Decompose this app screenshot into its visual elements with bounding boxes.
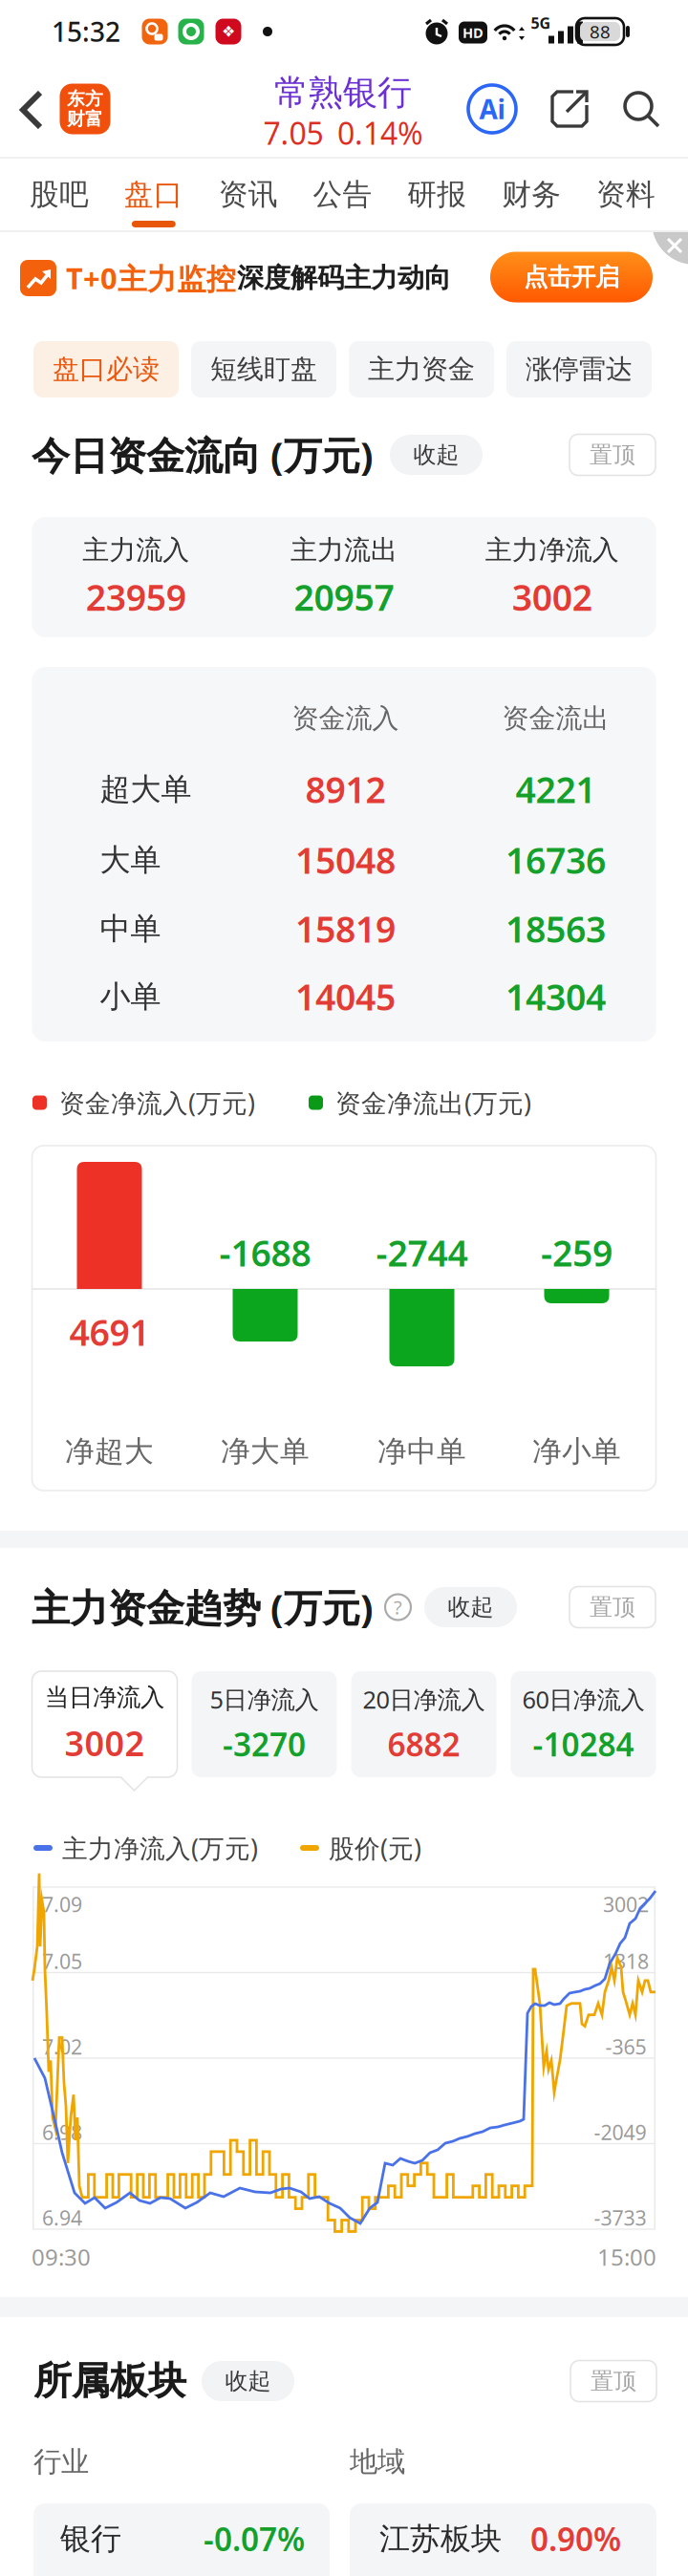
staticText: -3733: [594, 2204, 646, 2231]
staticText: 14045: [295, 973, 396, 1020]
staticText: 20日净流入: [363, 1683, 485, 1715]
staticText: -365: [605, 2033, 646, 2060]
staticText: 超大单: [100, 770, 192, 808]
staticText: 7.09: [42, 1891, 82, 1918]
staticText: 资金流出: [502, 702, 609, 735]
staticText: 小单: [100, 978, 161, 1015]
staticText: 研报: [407, 176, 467, 213]
staticText: 净中单: [377, 1433, 466, 1469]
staticText: 主力净流入: [485, 534, 619, 567]
staticText: 1318: [603, 1948, 649, 1975]
staticText: -0.07%: [204, 2518, 305, 2560]
button[interactable]: 短线盯盘: [191, 341, 336, 397]
staticText: 行业: [33, 2445, 89, 2479]
staticText: 资金流入: [292, 702, 399, 735]
button[interactable]: 主力资金: [349, 341, 494, 397]
staticText: 点击开启: [524, 262, 619, 292]
button[interactable]: Ai 助手: [468, 85, 516, 133]
staticText: 4691: [69, 1308, 150, 1356]
button[interactable]: 收起: [186, 2361, 294, 2401]
staticText: 收起: [225, 2367, 271, 2395]
staticText: 15:32: [52, 14, 120, 49]
button[interactable]: 资讯: [219, 159, 278, 230]
button[interactable]: 股吧: [30, 159, 89, 230]
staticText: 主力流出: [290, 534, 398, 567]
button[interactable]: 公告: [313, 159, 372, 230]
staticText: 资金净流入(万元): [59, 1086, 255, 1120]
button[interactable]: 5日净流入: [192, 1671, 337, 1777]
staticText: -2744: [376, 1229, 468, 1276]
staticText: 地域: [350, 2445, 405, 2479]
button[interactable]: 20日净流入: [351, 1671, 496, 1777]
staticText: 财富: [67, 108, 103, 130]
button[interactable]: 帮助: [374, 1594, 411, 1620]
staticText: -3270: [223, 1723, 306, 1765]
staticText: Ai: [479, 91, 505, 127]
staticText: 5日净流入: [210, 1683, 319, 1715]
button[interactable]: 收起: [374, 435, 483, 475]
staticText: 3002: [603, 1891, 649, 1918]
staticText: 7.05: [263, 113, 323, 153]
button[interactable]: 财务: [502, 159, 561, 230]
staticText: 常熟银行: [274, 72, 412, 114]
staticText: 4221: [516, 766, 596, 813]
button[interactable]: 盘口必读: [33, 341, 179, 397]
staticText: 银行: [60, 2520, 121, 2557]
staticText: 0.90%: [530, 2518, 621, 2560]
button[interactable]: 当日净流入: [32, 1671, 177, 1777]
staticText: 盘口必读: [53, 353, 160, 386]
button[interactable]: 资料: [596, 159, 656, 230]
staticText: 主力流入: [82, 534, 189, 567]
staticText: 60日净流入: [522, 1683, 645, 1715]
staticText: 股价(元): [329, 1831, 421, 1865]
staticText: 15048: [295, 836, 396, 884]
button[interactable]: Share: [548, 88, 591, 130]
button[interactable]: 盘口: [124, 159, 183, 230]
staticText: 当日净流入: [45, 1683, 164, 1712]
button[interactable]: 关闭: [648, 228, 688, 267]
staticText: 收起: [448, 1593, 494, 1621]
staticText: 资金净流出(万元): [335, 1086, 531, 1120]
button[interactable]: 收起: [411, 1587, 517, 1627]
button[interactable]: 置顶: [570, 434, 656, 475]
staticText: 资料: [596, 176, 656, 213]
staticText: 净大单: [221, 1433, 310, 1469]
staticText: 6882: [387, 1723, 460, 1765]
staticText: 短线盯盘: [210, 353, 317, 386]
staticText: 8912: [305, 766, 386, 813]
staticText: 净小单: [532, 1433, 621, 1469]
staticText: 7.02: [42, 2033, 82, 2060]
staticText: 公告: [313, 176, 372, 213]
staticText: 主力资金: [368, 353, 475, 386]
button[interactable]: 涨停雷达: [506, 341, 652, 397]
staticText: 置顶: [591, 2367, 636, 2395]
staticText: 资讯: [219, 176, 278, 213]
staticText: 今日资金流向 (万元): [32, 429, 374, 480]
button[interactable]: 东方财富: [60, 84, 110, 134]
button[interactable]: T+0主力监控: [0, 232, 688, 325]
staticText: 23959: [86, 573, 186, 621]
staticText: 18563: [505, 905, 606, 952]
button[interactable]: 置顶: [570, 2361, 656, 2402]
button[interactable]: Search: [620, 88, 662, 130]
staticText: 15:00: [597, 2242, 656, 2272]
staticText: 盘口: [124, 176, 183, 213]
staticText: 主力净流入(万元): [62, 1831, 258, 1865]
button[interactable]: 银行: [33, 2503, 330, 2576]
staticText: -10284: [533, 1723, 634, 1765]
button[interactable]: Back: [19, 89, 44, 131]
staticText: -2049: [594, 2119, 646, 2146]
button[interactable]: 江苏板块: [350, 2503, 656, 2576]
staticText: 涨停雷达: [526, 353, 633, 386]
staticText: 深度解码主力动向: [237, 262, 451, 294]
staticText: 财务: [502, 176, 561, 213]
staticText: 7.05: [42, 1948, 82, 1975]
staticText: 0.14%: [337, 113, 423, 153]
staticText: T+0主力监控: [66, 259, 236, 298]
button[interactable]: 研报: [407, 159, 467, 230]
staticText: HD: [462, 23, 484, 42]
button[interactable]: 60日净流入: [511, 1671, 656, 1777]
button[interactable]: 置顶: [570, 1587, 656, 1628]
staticText: 收起: [413, 441, 459, 469]
staticText: 5G: [531, 13, 551, 33]
